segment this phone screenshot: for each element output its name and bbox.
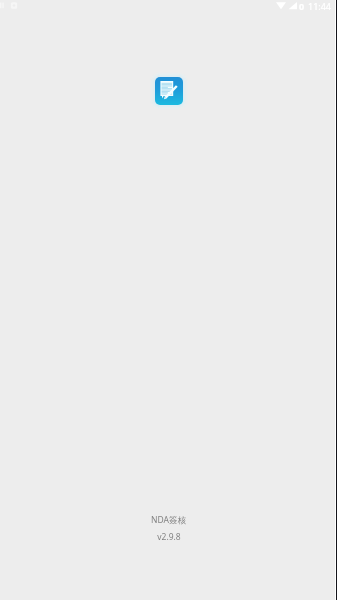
other: Mobile signal: [288, 1, 297, 10]
other: Notification: [10, 1, 18, 10]
staticText: 11:44: [308, 0, 332, 11]
button[interactable]: NDA 簽核 app logo: [151, 73, 187, 109]
staticText: v2.9.8: [157, 531, 181, 543]
staticText: NDA簽核: [151, 514, 186, 526]
staticText: 0: [299, 0, 305, 11]
other: Wi-Fi: [276, 1, 286, 10]
